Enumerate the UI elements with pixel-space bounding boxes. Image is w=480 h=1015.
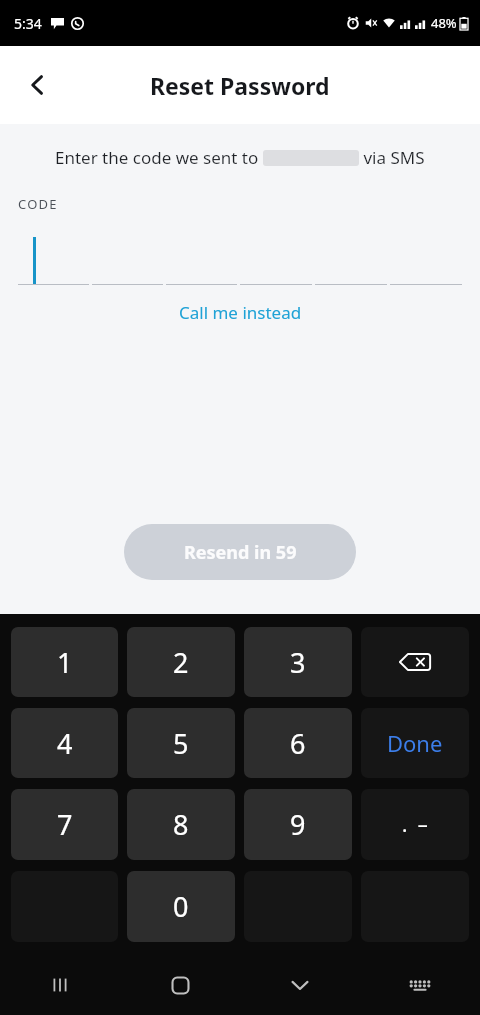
button[interactable]: Dot and dash <box>361 789 469 860</box>
staticText: 5 <box>173 725 189 762</box>
staticText: 2 <box>173 644 189 681</box>
button[interactable]: Backspace <box>361 627 469 697</box>
button[interactable]: Hide keyboard <box>240 955 360 1015</box>
button[interactable] <box>166 227 237 285</box>
button[interactable] <box>92 227 163 285</box>
button[interactable]: 3 <box>244 627 352 697</box>
staticText: 8 <box>173 806 189 843</box>
button[interactable]: Done <box>361 708 469 778</box>
staticText: via SMS <box>359 146 425 169</box>
staticText: 1 <box>57 644 73 681</box>
button[interactable]: Call me instead <box>169 297 312 328</box>
staticText: Resend in 59 <box>184 540 297 565</box>
button[interactable]: 7 <box>11 789 118 860</box>
button[interactable]: Recent apps <box>0 955 120 1015</box>
button[interactable]: Switch keyboard <box>360 955 480 1015</box>
button[interactable]: 2 <box>127 627 235 697</box>
button[interactable]: 4 <box>11 708 118 778</box>
button[interactable] <box>390 227 462 285</box>
button[interactable]: 0 <box>127 871 235 942</box>
staticText: 5:34 <box>14 14 42 33</box>
button[interactable] <box>240 227 312 285</box>
staticText: Done <box>387 728 443 758</box>
button[interactable]: 5 <box>127 708 235 778</box>
staticText: 3 <box>290 644 306 681</box>
staticText: Enter the code we sent to <box>55 146 263 169</box>
staticText: 6 <box>290 725 306 762</box>
button[interactable] <box>315 227 387 285</box>
staticText: 0 <box>173 888 189 925</box>
staticText: Reset Password <box>150 70 330 101</box>
button[interactable]: 6 <box>244 708 352 778</box>
staticText: CODE <box>18 195 58 213</box>
staticText: Call me instead <box>179 301 302 324</box>
button[interactable]: Home <box>120 955 240 1015</box>
staticText: 9 <box>290 806 306 843</box>
button[interactable]: Resend in 59 <box>124 524 356 580</box>
button[interactable]: 9 <box>244 789 352 860</box>
button[interactable]: 1 <box>11 627 118 697</box>
button[interactable]: Back <box>14 61 62 109</box>
button[interactable] <box>18 227 89 285</box>
staticText: 48% <box>431 14 457 32</box>
staticText: . – <box>402 811 428 838</box>
staticText: 7 <box>57 806 73 843</box>
button[interactable]: 8 <box>127 789 235 860</box>
staticText: 4 <box>57 725 73 762</box>
